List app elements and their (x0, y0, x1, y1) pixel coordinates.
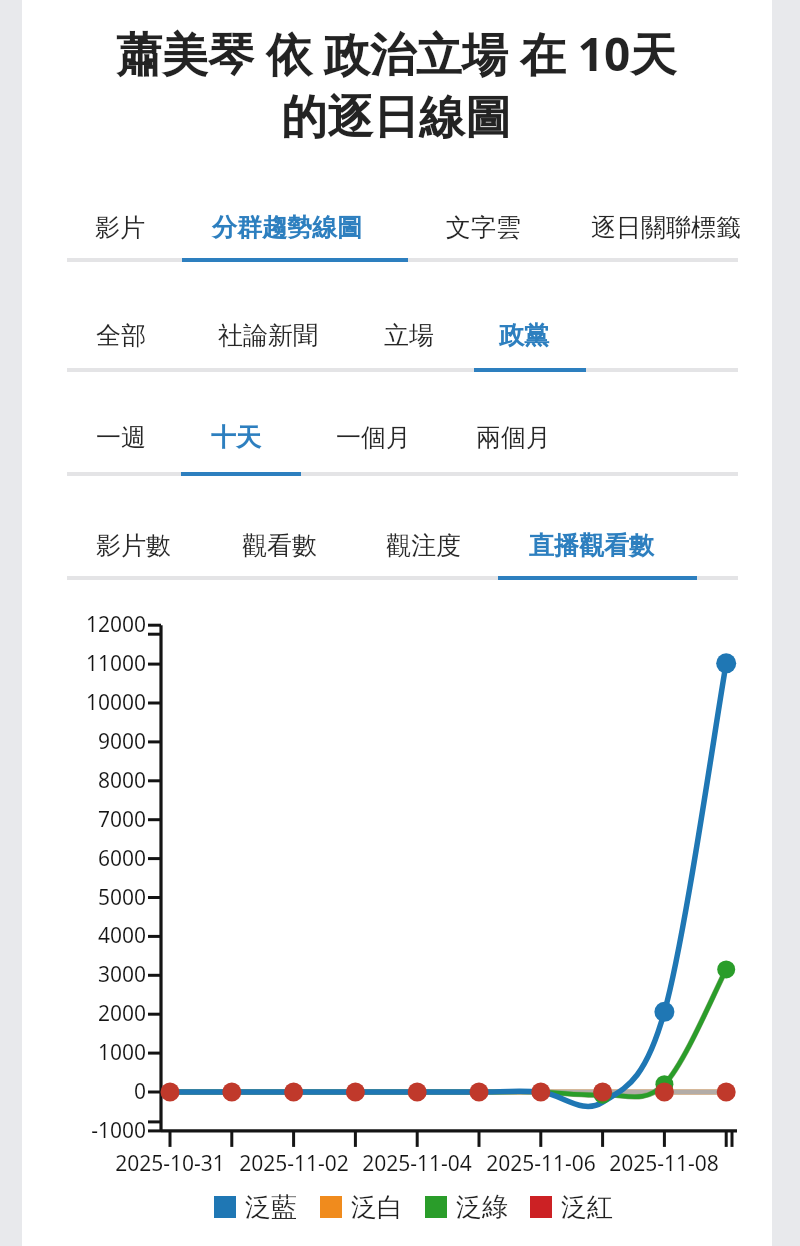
staticText: 2025-11-02 (214, 1149, 374, 1178)
staticText: 觀看數 (242, 530, 317, 561)
staticText: 8000 (24, 766, 146, 795)
staticText: 0 (24, 1077, 146, 1106)
staticText: 觀注度 (386, 530, 461, 561)
staticText: 政黨 (499, 320, 549, 351)
staticText: 6000 (24, 844, 146, 873)
staticText: 立場 (384, 320, 434, 351)
staticText: 11000 (24, 649, 146, 678)
button[interactable]: 立場 (374, 308, 424, 339)
button[interactable]: 影片數 (86, 518, 161, 549)
staticText: 泛白 (351, 1191, 403, 1224)
button[interactable]: 社論新聞 (208, 308, 308, 339)
button[interactable]: 觀注度 (376, 518, 451, 549)
staticText: 文字雲 (446, 212, 521, 243)
staticText: 5000 (24, 883, 146, 912)
staticText: 2025-11-04 (337, 1149, 497, 1178)
staticText: 9000 (24, 727, 146, 756)
staticText: 泛綠 (456, 1191, 508, 1224)
staticText: 泛藍 (245, 1191, 297, 1224)
staticText: 7000 (24, 805, 146, 834)
staticText: 1000 (24, 1038, 146, 1067)
button[interactable]: 影片 (85, 200, 135, 231)
staticText: 2025-11-08 (584, 1149, 744, 1178)
staticText: 十天 (211, 422, 261, 453)
button[interactable]: 觀看數 (232, 518, 307, 549)
staticText: -1000 (24, 1116, 146, 1145)
staticText: 逐日關聯標籤 (591, 212, 741, 243)
button[interactable]: 一週 (86, 410, 136, 441)
staticText: 4000 (24, 921, 146, 950)
staticText: 2025-11-06 (461, 1149, 621, 1178)
staticText: 10000 (24, 688, 146, 717)
button[interactable]: 逐日關聯標籤 (581, 200, 731, 231)
staticText: 泛紅 (561, 1191, 613, 1224)
staticText: 分群趨勢線圖 (212, 212, 362, 243)
button[interactable]: 十天 (201, 410, 251, 441)
staticText: 12000 (24, 610, 146, 639)
staticText: 兩個月 (476, 422, 551, 453)
staticText: 全部 (96, 320, 146, 351)
staticText: 直播觀看數 (529, 530, 654, 561)
button[interactable]: 直播觀看數 (519, 518, 644, 549)
button[interactable]: 文字雲 (436, 200, 511, 231)
staticText: 影片數 (96, 530, 171, 561)
button[interactable]: 政黨 (489, 308, 539, 339)
button[interactable]: 全部 (86, 308, 136, 339)
staticText: 影片 (95, 212, 145, 243)
staticText: 2025-10-31 (90, 1149, 250, 1178)
staticText: 一個月 (336, 422, 411, 453)
staticText: 社論新聞 (218, 320, 318, 351)
button[interactable]: 兩個月 (466, 410, 541, 441)
staticText: 蕭美琴 依 政治立場 在 10天 的逐日線圖 (46, 22, 746, 147)
button[interactable]: 一個月 (326, 410, 401, 441)
staticText: 一週 (96, 422, 146, 453)
staticText: 3000 (24, 960, 146, 989)
button[interactable]: 分群趨勢線圖 (202, 200, 352, 231)
staticText: 2000 (24, 999, 146, 1028)
